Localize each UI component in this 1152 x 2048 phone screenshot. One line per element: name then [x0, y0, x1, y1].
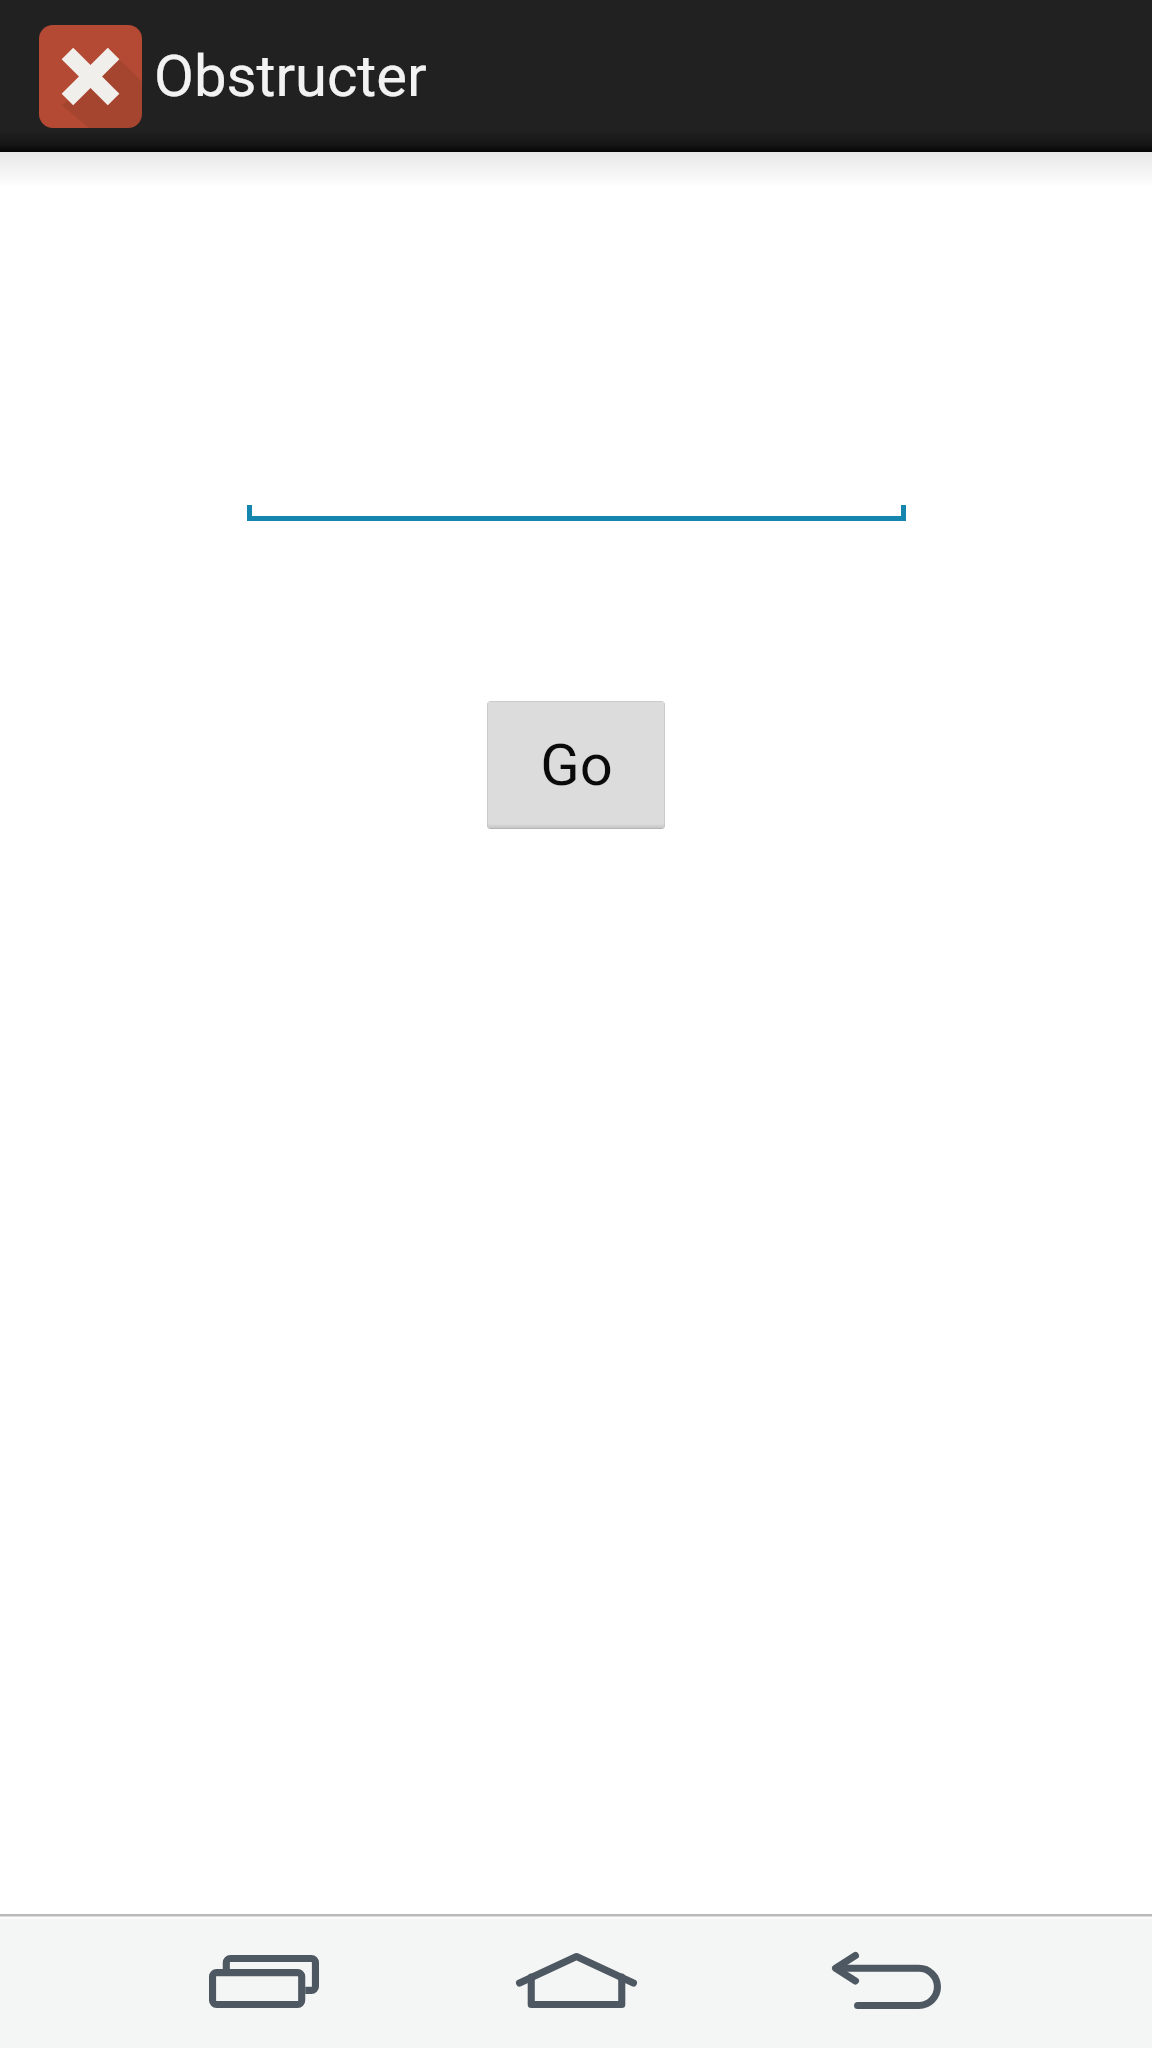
button[interactable]: Go [487, 701, 665, 829]
button[interactable]: Home [420, 1919, 732, 2044]
button[interactable] [247, 461, 906, 521]
button[interactable]: Back [732, 1919, 1044, 2044]
staticText: Go [540, 731, 613, 799]
button[interactable]: Recent apps [108, 1919, 420, 2044]
staticText: Obstructer [154, 42, 427, 110]
button[interactable]: Obstructer app icon [39, 25, 142, 128]
